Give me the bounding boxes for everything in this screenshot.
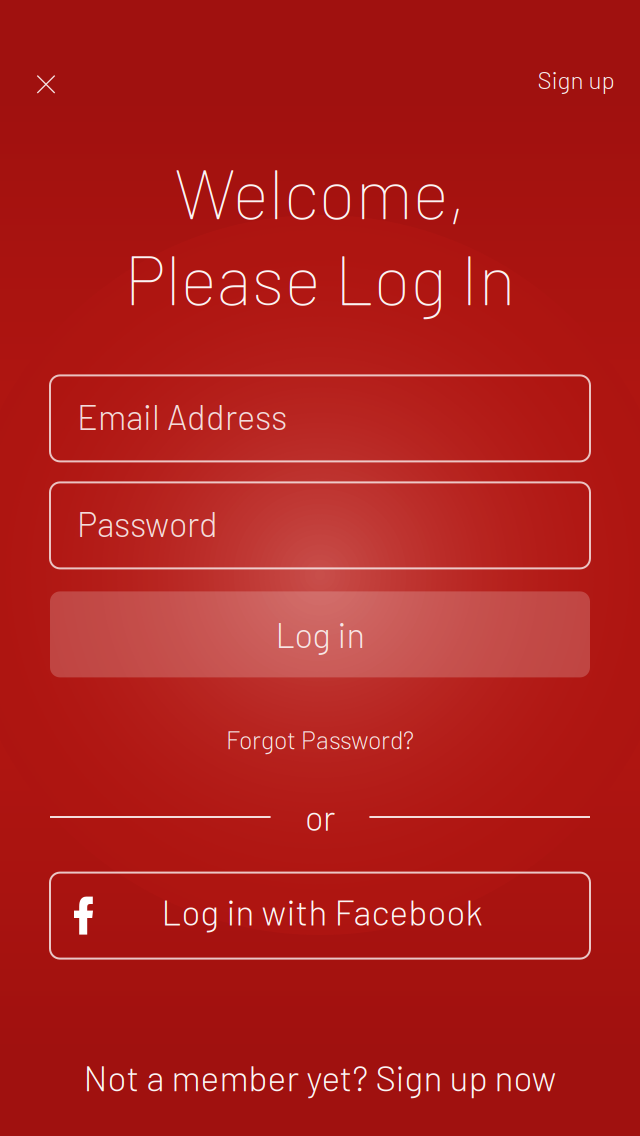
staticText: Not a member yet? Sign up now: [83, 1056, 556, 1098]
staticText: Welcome,: [174, 150, 465, 233]
button[interactable]: Close: [0, 49, 92, 113]
button[interactable]: Forgot Password?: [170, 715, 470, 763]
staticText: Log in: [275, 614, 364, 655]
staticText: Log in with Facebook: [161, 891, 482, 932]
staticText: Forgot Password?: [226, 724, 414, 754]
button[interactable]: Not a member yet? Sign up now: [58, 1052, 582, 1108]
button[interactable]: Log in with Facebook: [50, 873, 590, 959]
button[interactable]: Log in: [50, 591, 590, 677]
staticText: Email Address: [77, 396, 287, 437]
staticText: Password: [77, 503, 218, 544]
staticText: Please Log In: [124, 236, 515, 319]
staticText: or: [305, 796, 335, 837]
button[interactable]: Sign up: [512, 49, 640, 113]
staticText: Sign up: [537, 65, 614, 94]
